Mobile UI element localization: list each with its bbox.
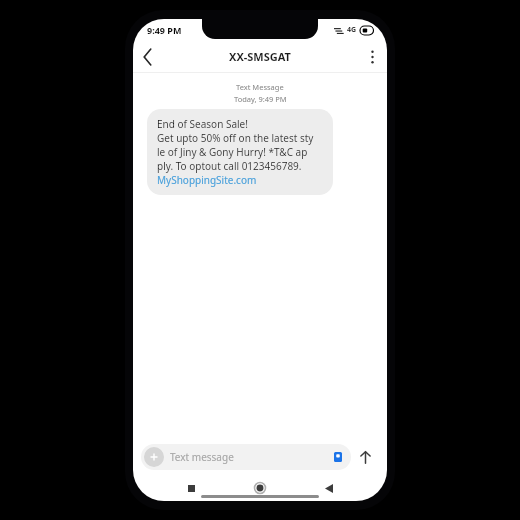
button[interactable]: Recent apps <box>180 477 202 499</box>
staticText: XX-SMSGAT <box>229 49 291 64</box>
button[interactable]: Send <box>351 443 379 471</box>
button[interactable]: MyShoppingSite.com <box>157 173 257 187</box>
staticText: le of Jiny & Gony Hurry! *T&C ap <box>157 145 308 159</box>
staticText: 4G <box>347 25 357 35</box>
button[interactable]: Add attachment <box>144 447 164 467</box>
button[interactable]: Add attachment <box>141 444 351 470</box>
button[interactable]: Home <box>249 477 271 499</box>
staticText: Get upto 50% off on the latest sty <box>157 131 314 145</box>
staticText: End of Season Sale! <box>157 117 248 131</box>
button[interactable]: Back <box>318 477 340 499</box>
button[interactable]: SIM card <box>328 447 348 467</box>
button[interactable]: More options <box>357 42 387 72</box>
button[interactable]: Back <box>133 42 163 72</box>
staticText: Text Message <box>236 82 284 92</box>
staticText: 9:49 PM <box>147 24 182 36</box>
staticText: Text message <box>170 450 328 464</box>
staticText: Today, 9:49 PM <box>234 94 287 104</box>
staticText: ply. To optout call 0123456789. <box>157 159 302 173</box>
button[interactable]: End of Season Sale! <box>147 109 333 195</box>
